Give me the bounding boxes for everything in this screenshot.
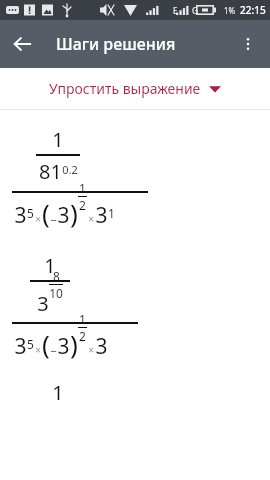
staticText: 1 (52, 126, 64, 153)
staticText: 3 (95, 332, 108, 361)
staticText: 1 (79, 180, 86, 196)
staticText: − (50, 343, 57, 358)
staticText: ) (70, 195, 78, 230)
staticText: 3 (57, 332, 70, 361)
staticText: 22:15 (240, 3, 266, 17)
staticText: 3 (95, 201, 108, 230)
staticText: 1% (224, 5, 236, 16)
staticText: ) (70, 326, 78, 361)
staticText: 8 (53, 268, 60, 284)
staticText: 0.2 (62, 162, 78, 177)
staticText: 1 (108, 205, 115, 221)
button[interactable]: More options (226, 22, 270, 66)
button[interactable]: Упростить выражение (0, 68, 270, 109)
staticText: E (173, 5, 178, 16)
staticText: 5 (27, 205, 34, 221)
staticText: 5 (27, 336, 34, 352)
staticText: × (35, 343, 41, 357)
staticText: × (35, 212, 41, 226)
staticText: 1 (44, 252, 56, 279)
staticText: 2 (79, 197, 86, 213)
staticText: ( (42, 326, 50, 361)
button[interactable]: Back (0, 22, 44, 66)
staticText: × (88, 212, 94, 226)
staticText: 2 (79, 328, 86, 344)
staticText: 10 (49, 285, 63, 301)
staticText: 81 (39, 158, 62, 185)
staticText: G (192, 5, 198, 16)
staticText: Упростить выражение (49, 79, 201, 98)
staticText: − (50, 212, 57, 227)
staticText: × (88, 343, 94, 357)
staticText: 1 (79, 311, 86, 327)
staticText: 3 (37, 290, 49, 317)
staticText: Шаги решения (56, 33, 176, 55)
staticText: ( (42, 195, 50, 230)
staticText: 3 (14, 201, 27, 230)
staticText: 3 (57, 201, 70, 230)
staticText: 1 (52, 379, 64, 406)
staticText: 3 (14, 332, 27, 361)
